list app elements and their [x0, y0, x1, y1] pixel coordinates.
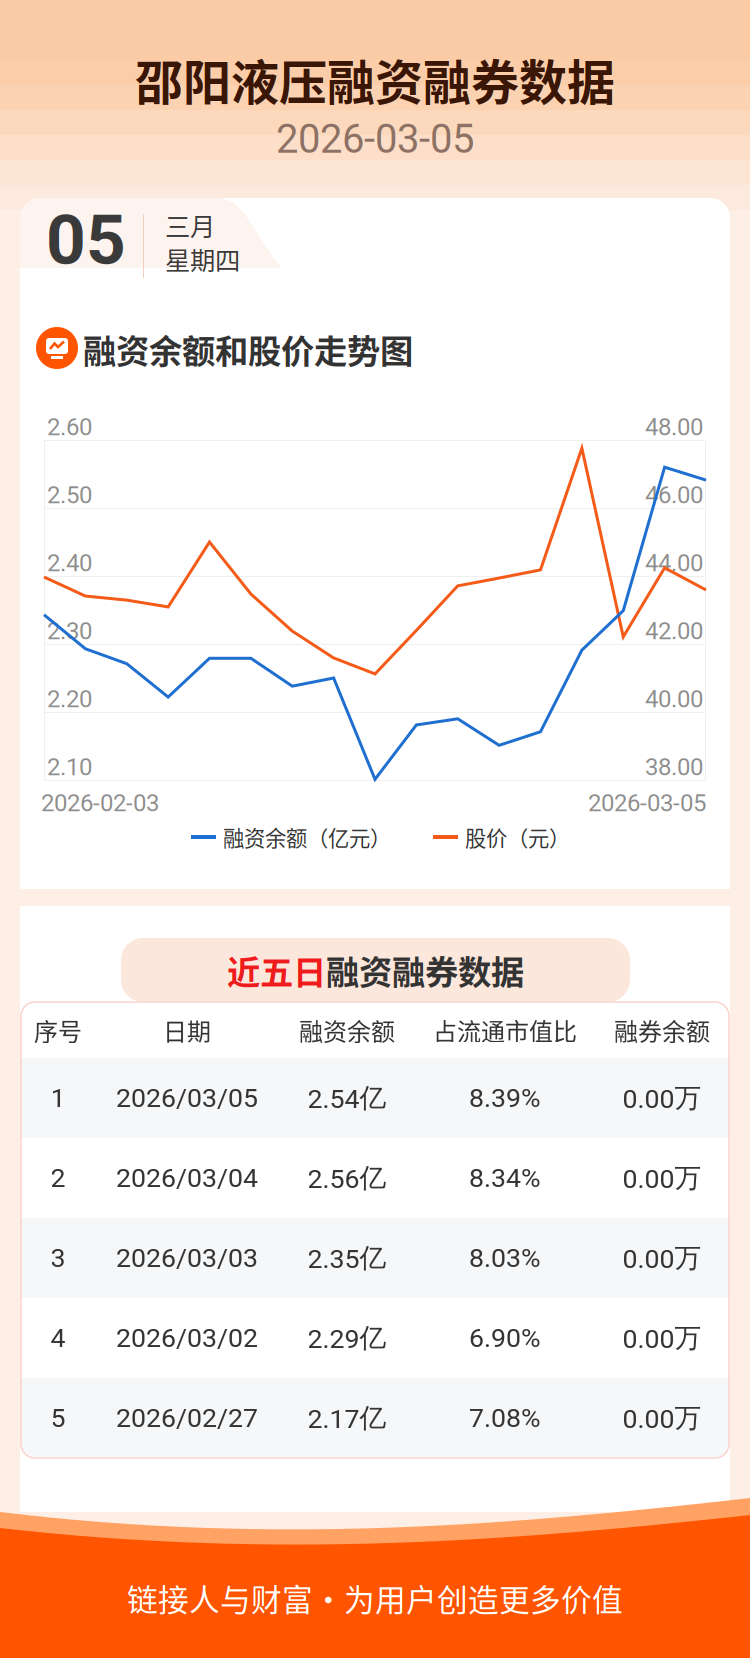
staticText: 2.20: [47, 685, 92, 713]
staticText: 8.03%: [469, 1242, 541, 1274]
staticText: 融资融券数据: [326, 946, 524, 994]
staticText: 8.34%: [469, 1162, 541, 1194]
staticText: 2.60: [47, 413, 92, 441]
staticText: 0.00万: [622, 1241, 701, 1275]
staticText: 0.00万: [622, 1161, 701, 1195]
staticText: 链接人与财富·为用户创造更多价值: [127, 1576, 623, 1620]
staticText: 2026/03/04: [116, 1162, 258, 1194]
staticText: 2026/02/27: [116, 1402, 258, 1434]
staticText: 融资余额（亿元）: [223, 822, 391, 852]
staticText: 2026/03/05: [116, 1082, 258, 1114]
staticText: 股价（元）: [465, 822, 570, 852]
staticText: 44.00: [645, 549, 703, 577]
staticText: 2.56亿: [307, 1161, 386, 1195]
staticText: 2026-03-05: [588, 789, 706, 817]
staticText: 7.08%: [469, 1402, 541, 1434]
staticText: 0.00万: [622, 1401, 701, 1435]
staticText: 40.00: [645, 685, 703, 713]
staticText: 2.35亿: [307, 1241, 386, 1275]
staticText: 05: [46, 199, 126, 281]
staticText: 2.54亿: [307, 1081, 386, 1115]
staticText: 2.50: [47, 481, 92, 509]
staticText: 3: [50, 1242, 65, 1274]
staticText: 1: [50, 1082, 65, 1114]
staticText: 42.00: [645, 617, 703, 645]
staticText: 三月: [165, 207, 215, 243]
staticText: 5: [50, 1402, 65, 1434]
staticText: 2026/03/02: [116, 1322, 258, 1354]
staticText: 2026-03-05: [276, 116, 474, 162]
staticText: 日期: [163, 1013, 211, 1047]
staticText: 星期四: [165, 241, 240, 277]
staticText: 融券余额: [614, 1013, 710, 1047]
staticText: 2.17亿: [307, 1401, 386, 1435]
staticText: 48.00: [645, 413, 703, 441]
staticText: 融资余额和股价走势图: [83, 325, 413, 373]
staticText: 2.40: [47, 549, 92, 577]
staticText: 2.29亿: [307, 1321, 386, 1355]
staticText: 2026-02-03: [41, 789, 159, 817]
staticText: 序号: [34, 1013, 82, 1047]
staticText: 近五日: [227, 946, 326, 994]
staticText: 46.00: [645, 481, 703, 509]
staticText: 2: [50, 1162, 65, 1194]
staticText: 4: [50, 1322, 65, 1354]
staticText: 6.90%: [469, 1322, 541, 1354]
staticText: 2026/03/03: [116, 1242, 258, 1274]
staticText: 38.00: [645, 753, 703, 781]
staticText: 2.10: [47, 753, 92, 781]
staticText: 邵阳液压融资融券数据: [135, 44, 615, 114]
staticText: 8.39%: [469, 1082, 541, 1114]
staticText: 0.00万: [622, 1321, 701, 1355]
staticText: 融资余额: [299, 1013, 395, 1047]
staticText: 2.30: [47, 617, 92, 645]
staticText: 占流通市值比: [433, 1013, 577, 1047]
staticText: 0.00万: [622, 1081, 701, 1115]
